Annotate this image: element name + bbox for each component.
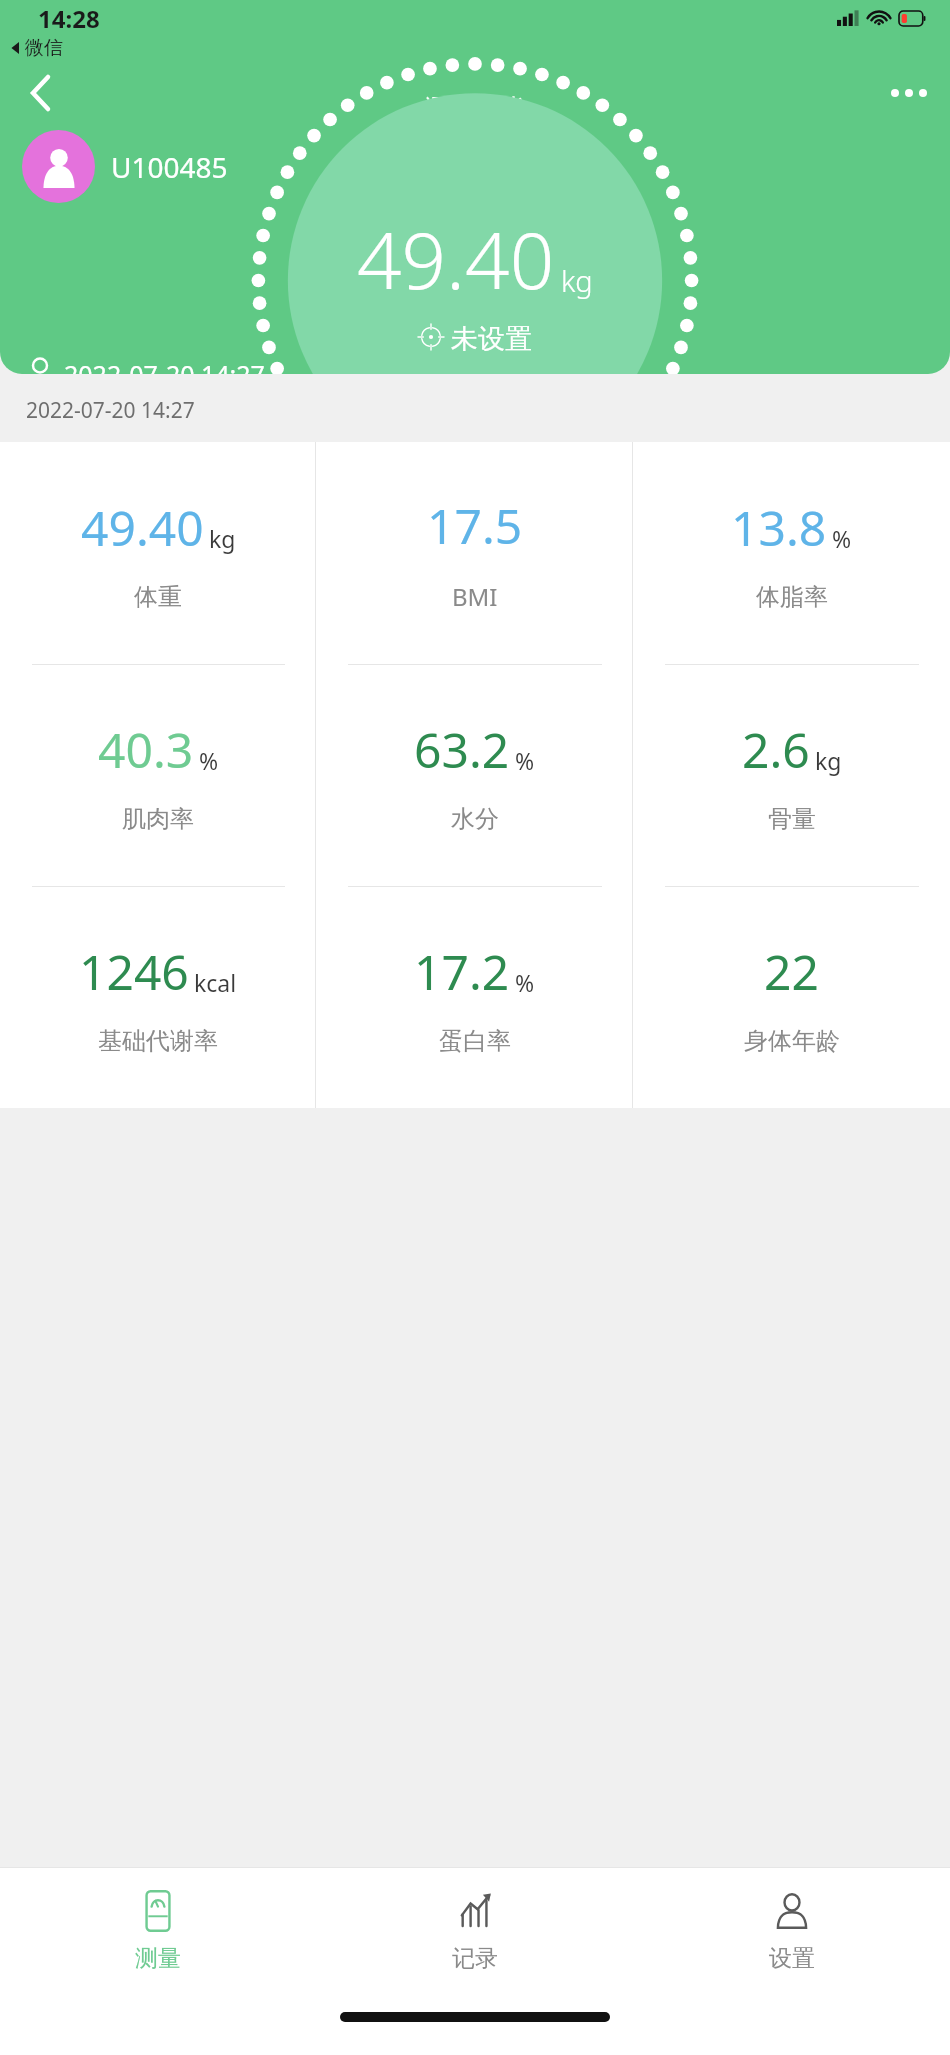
staticText: 49.40	[357, 206, 555, 312]
staticText: kg	[815, 745, 842, 776]
staticText: kg	[209, 523, 236, 554]
button[interactable]: 49.40	[0, 442, 316, 664]
button[interactable]: 2.6	[633, 664, 950, 886]
staticText: 骨量	[768, 804, 816, 834]
staticText: 蛋白率	[439, 1026, 511, 1056]
button[interactable]: 22	[633, 886, 950, 1108]
button[interactable]: More options	[882, 66, 936, 120]
staticText: %	[515, 745, 535, 776]
button[interactable]: 63.2	[316, 664, 633, 886]
staticText: 微信	[25, 36, 63, 60]
staticText: 17.5	[427, 493, 523, 558]
staticText: 记录	[452, 1944, 498, 1973]
staticText: kcal	[194, 967, 237, 998]
staticText: %	[515, 967, 535, 998]
staticText: 基础代谢率	[98, 1026, 218, 1056]
staticText: 身体年龄	[744, 1026, 840, 1056]
staticText: 测量完毕	[425, 93, 525, 124]
staticText: 2.6	[742, 717, 810, 782]
staticText: 体脂率	[756, 582, 828, 612]
staticText: 63.2	[414, 717, 510, 782]
button[interactable]: 测量	[0, 1868, 316, 1993]
staticText: 测量	[135, 1944, 181, 1973]
staticText: 未设置	[451, 322, 532, 351]
staticText: 1246	[79, 939, 189, 1004]
staticText: 2022-07-20 14:27	[64, 357, 265, 374]
staticText: 13.8	[731, 495, 827, 560]
staticText: 40.3	[98, 717, 194, 782]
staticText: 22	[764, 939, 819, 1004]
staticText: 体重	[134, 582, 182, 612]
button[interactable]: 未设置	[418, 322, 532, 351]
staticText: kg	[561, 261, 593, 300]
button[interactable]: 2022-07-20 14:27	[26, 357, 265, 374]
staticText: 肌肉率	[122, 804, 194, 834]
button[interactable]: 设置	[633, 1868, 950, 1993]
button[interactable]: 13.8	[633, 442, 950, 664]
staticText: %	[199, 745, 219, 776]
button[interactable]: 17.2	[316, 886, 633, 1108]
staticText: %	[832, 523, 852, 554]
staticText: 17.2	[414, 939, 510, 1004]
button[interactable]: 17.5	[316, 442, 633, 664]
button[interactable]: Back	[14, 66, 68, 120]
staticText: 49.40	[81, 495, 204, 560]
button[interactable]: 40.3	[0, 664, 316, 886]
staticText: U100485	[111, 148, 228, 186]
staticText: 水分	[451, 804, 499, 834]
staticText: 设置	[769, 1944, 815, 1973]
staticText: BMI	[452, 580, 498, 613]
button[interactable]: 记录	[316, 1868, 633, 1993]
button[interactable]: U100485	[22, 130, 228, 203]
staticText: 14:28	[38, 2, 100, 35]
staticText: 2022-07-20 14:27	[26, 396, 195, 425]
button[interactable]: 1246	[0, 886, 316, 1108]
